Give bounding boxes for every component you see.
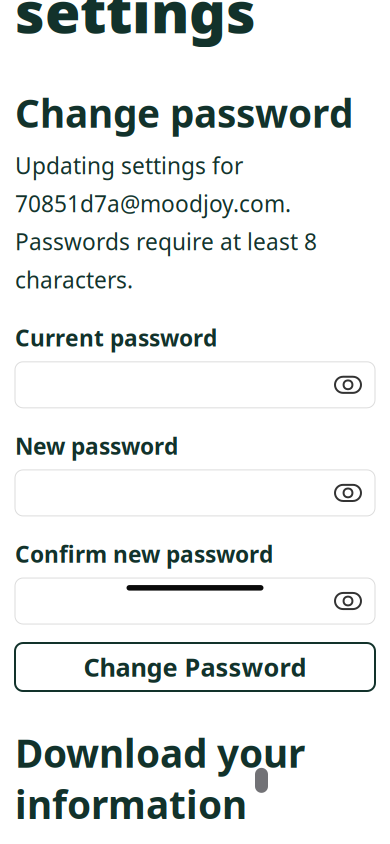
staticText: Confirm new password — [15, 539, 273, 569]
staticText: Account settings — [15, 0, 258, 49]
button[interactable]: Change Password — [15, 643, 375, 691]
staticText: Change password — [15, 87, 353, 138]
staticText: Updating settings for 70851d7a@moodjoy.c… — [15, 150, 317, 295]
staticText: Download your information — [15, 727, 305, 830]
staticText: Change Password — [83, 650, 306, 684]
staticText: Current password — [15, 323, 217, 353]
staticText: New password — [15, 431, 178, 461]
